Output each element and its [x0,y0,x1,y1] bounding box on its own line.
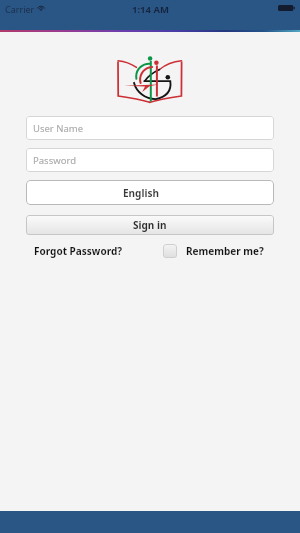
staticText: User Name [33,122,84,135]
staticText: Sign in [133,218,167,232]
button[interactable]: Remember me? [163,244,264,258]
staticText: English [123,186,159,200]
staticText: Password [33,154,76,167]
staticText: Carrier [5,3,35,15]
button[interactable]: English [26,180,274,205]
staticText: Remember me? [186,244,264,258]
button[interactable]: Sign in [26,215,274,235]
button[interactable]: Password [26,148,274,172]
button[interactable]: Forgot Password? [34,244,123,258]
staticText: 1:14 AM [132,3,169,16]
button[interactable]: User Name [26,116,274,140]
